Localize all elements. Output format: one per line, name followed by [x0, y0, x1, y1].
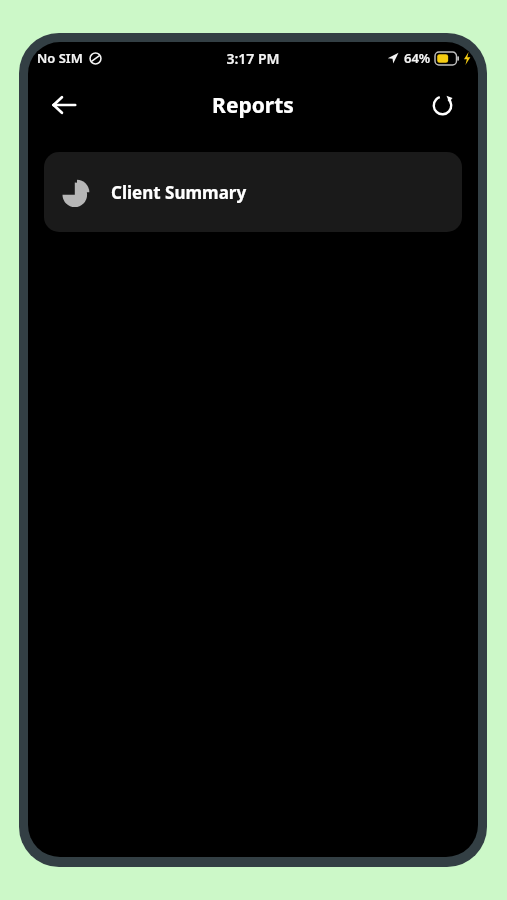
- staticText: 64%: [404, 49, 431, 67]
- staticText: Client Summary: [111, 181, 247, 204]
- staticText: 3:17 PM: [226, 49, 280, 68]
- staticText: Reports: [212, 91, 294, 120]
- button[interactable]: Client Summary: [44, 152, 462, 232]
- button[interactable]: Refresh: [422, 85, 462, 125]
- staticText: No SIM: [37, 49, 83, 67]
- button[interactable]: Back: [44, 85, 84, 125]
